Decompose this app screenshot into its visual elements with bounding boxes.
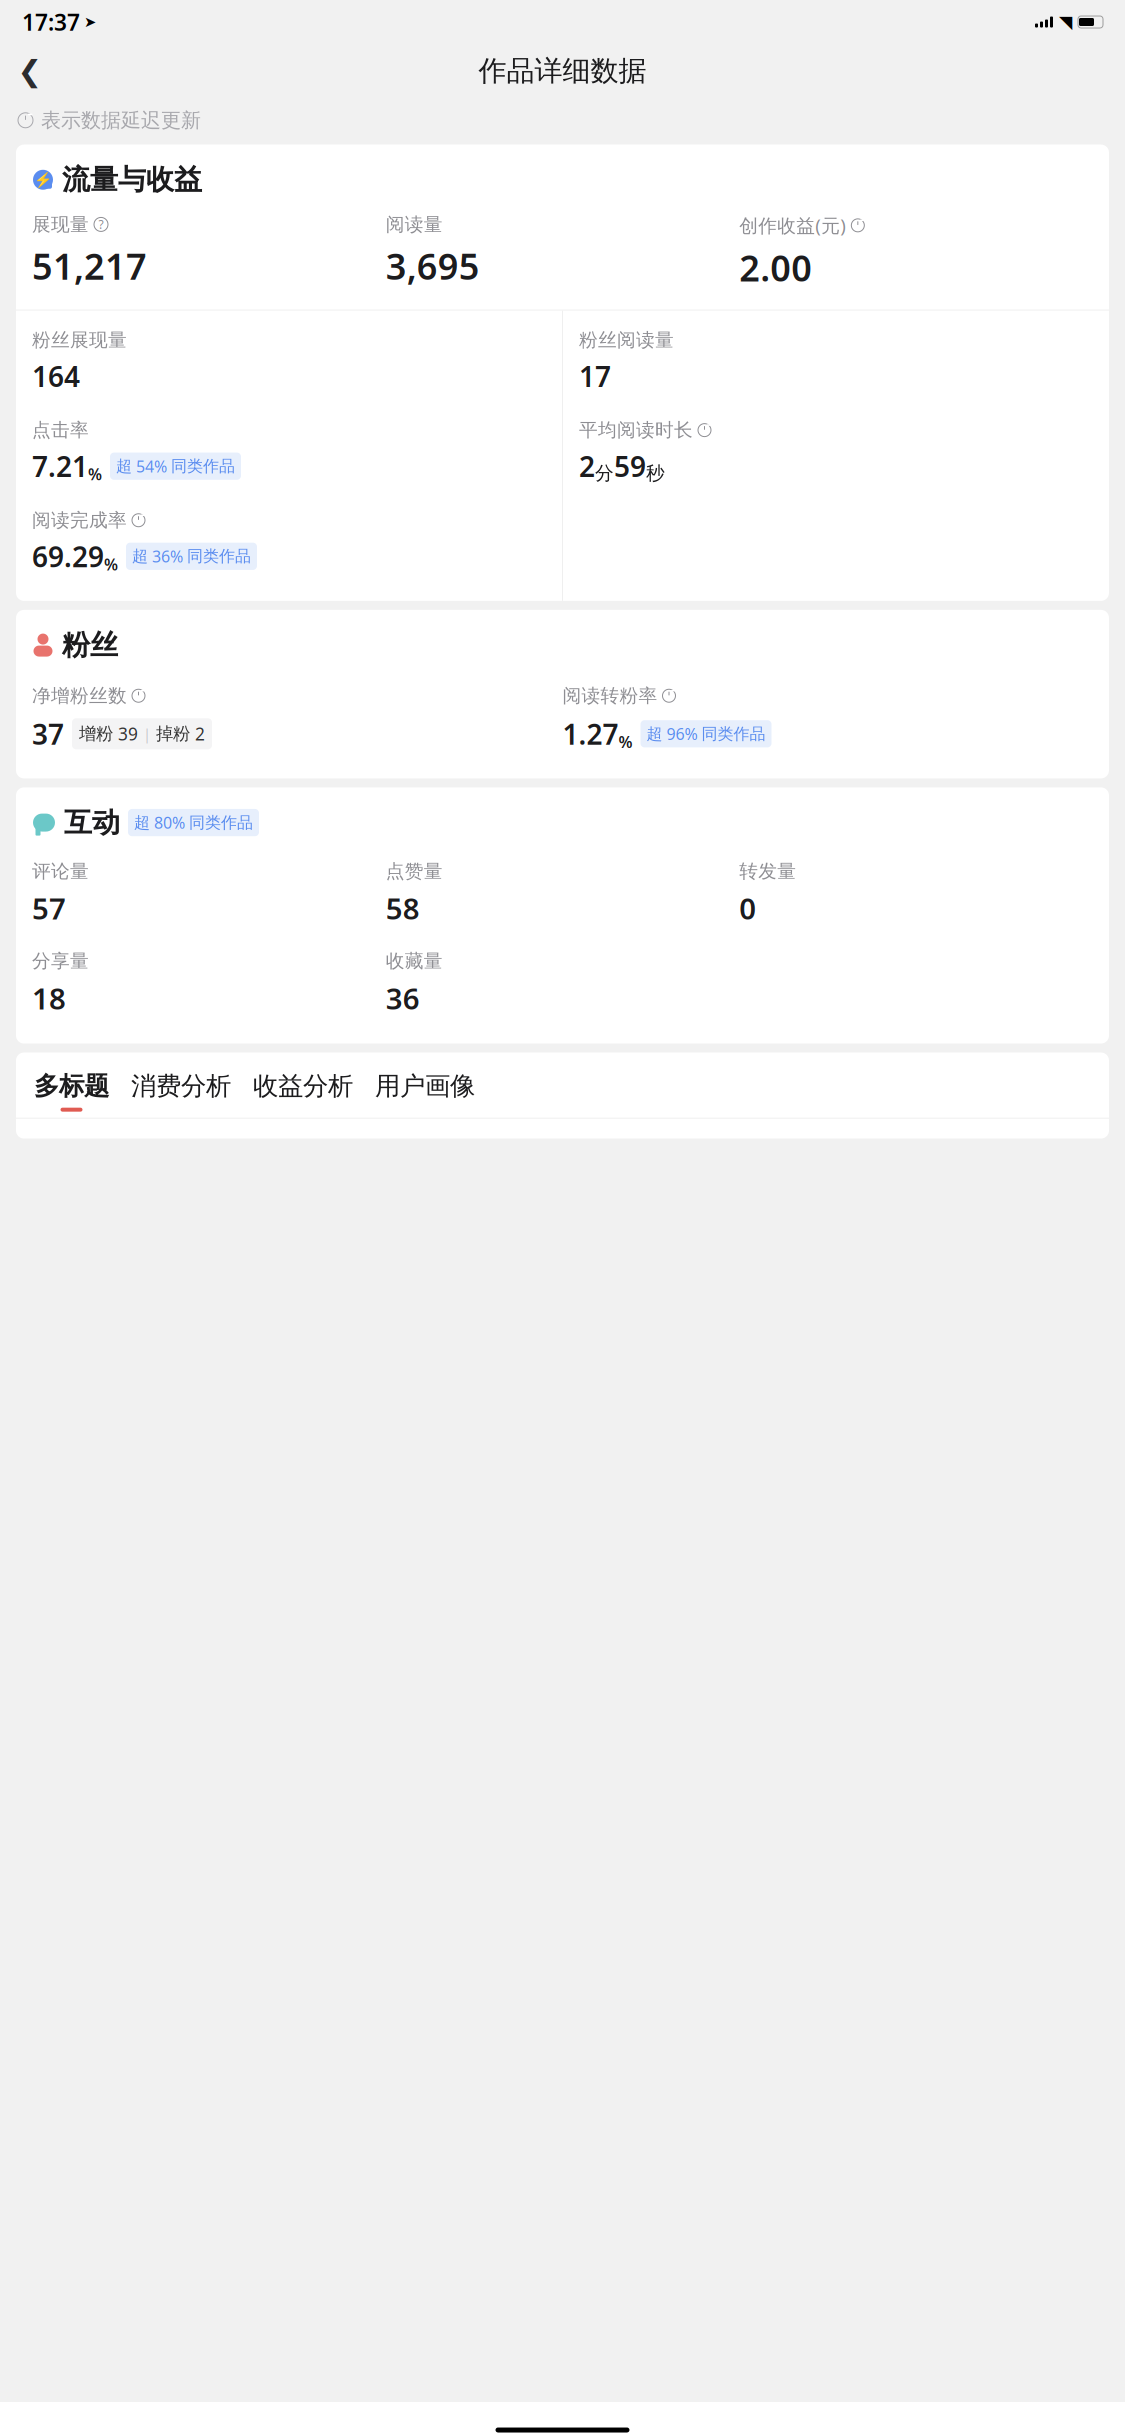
staticText: 17 (579, 357, 611, 395)
staticText: 164 (32, 357, 80, 395)
staticText: 净增粉丝数 (32, 684, 127, 707)
staticText: 1.27 (562, 715, 618, 752)
staticText: 同类作品 (189, 813, 253, 832)
staticText: 超 (132, 546, 148, 566)
staticText: 阅读完成率 (32, 509, 127, 532)
staticText: 69.29 (32, 538, 104, 575)
staticText: 点赞量 (386, 860, 443, 883)
staticText: 分享量 (32, 950, 89, 973)
staticText: ◥ (1059, 12, 1072, 32)
button[interactable]: 消费分析 (131, 1070, 253, 1112)
staticText: | (143, 724, 151, 744)
button[interactable]: 多标题 (34, 1070, 131, 1112)
staticText: 57 (32, 889, 66, 928)
staticText: 18 (32, 979, 66, 1018)
staticText: 秒 (646, 462, 665, 485)
staticText: 2 (195, 722, 205, 745)
staticText: ? (98, 216, 103, 232)
staticText: 平均阅读时长 (579, 419, 693, 442)
staticText: 收益分析 (253, 1070, 353, 1102)
staticText: 59 (614, 448, 646, 485)
staticText: 2.00 (739, 244, 812, 291)
staticText: 表示数据延迟更新 (41, 108, 201, 133)
staticText: 超 (116, 456, 132, 476)
staticText: 转发量 (739, 860, 796, 883)
staticText: 增粉 (79, 723, 113, 744)
button[interactable]: 收益分析 (253, 1070, 375, 1112)
staticText: 超 (646, 724, 662, 744)
staticText: 0 (739, 889, 756, 928)
staticText: 流量与收益 (62, 163, 202, 197)
button[interactable]: 用户画像 (375, 1070, 497, 1112)
staticText: 消费分析 (131, 1070, 231, 1102)
staticText: 3,695 (386, 242, 480, 290)
staticText: % (88, 463, 102, 485)
staticText: 点击率 (32, 419, 89, 442)
staticText: 7.21 (32, 448, 88, 485)
staticText: 用户画像 (375, 1070, 475, 1102)
staticText: 创作收益(元) (739, 213, 846, 238)
staticText: 互动 (64, 805, 120, 840)
staticText: 36% (152, 546, 183, 567)
staticText: 37 (32, 715, 64, 752)
staticText: 39 (118, 722, 138, 745)
staticText: 多标题 (34, 1070, 109, 1102)
staticText: 收藏量 (386, 950, 443, 973)
staticText: 掉粉 (156, 723, 190, 744)
staticText: 80% (154, 812, 185, 833)
button[interactable]: 返回 (8, 49, 52, 93)
staticText: 作品详细数据 (478, 54, 646, 88)
staticText: ⚡ (34, 171, 52, 188)
staticText: 58 (386, 889, 420, 928)
staticText: 同类作品 (701, 724, 765, 744)
staticText: 同类作品 (187, 546, 251, 566)
staticText: % (618, 731, 632, 752)
staticText: 同类作品 (171, 456, 235, 476)
staticText: 粉丝阅读量 (579, 329, 674, 351)
staticText: 96% (666, 723, 697, 744)
staticText: 2 (579, 448, 595, 485)
staticText: 超 (134, 813, 150, 832)
staticText: 展现量 (32, 213, 89, 236)
staticText: 17:37 (22, 7, 80, 37)
staticText: ❮ (17, 54, 42, 88)
staticText: 粉丝展现量 (32, 329, 127, 351)
staticText: ➤ (84, 14, 96, 30)
staticText: 54% (136, 456, 167, 477)
staticText: 阅读转粉率 (562, 684, 657, 707)
staticText: 阅读量 (386, 213, 443, 236)
staticText: 分 (595, 462, 614, 485)
staticText: % (104, 554, 118, 575)
staticText: 粉丝 (62, 628, 118, 662)
staticText: 51,217 (32, 242, 147, 290)
staticText: 评论量 (32, 860, 89, 883)
staticText: 36 (386, 979, 420, 1018)
